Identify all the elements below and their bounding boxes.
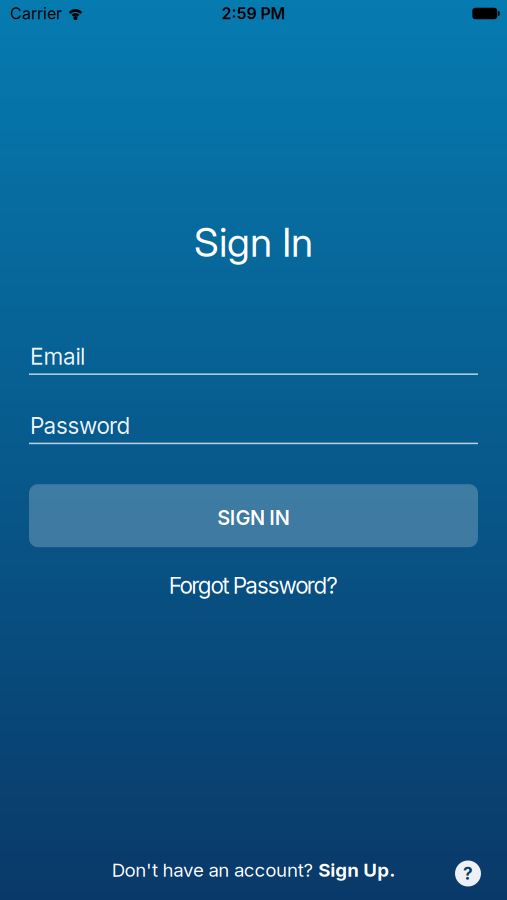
staticText: Sign In [194, 218, 313, 266]
staticText: Email [30, 343, 85, 370]
staticText: Sign Up. [318, 859, 395, 881]
staticText: Password [30, 412, 130, 439]
staticText: ? [463, 863, 473, 884]
staticText: SIGN IN [217, 506, 290, 529]
staticText: 2:59 PM [221, 4, 285, 23]
staticText: Don't have an account? [112, 859, 318, 881]
staticText: Forgot Password? [169, 572, 338, 599]
staticText: Carrier [10, 4, 62, 23]
